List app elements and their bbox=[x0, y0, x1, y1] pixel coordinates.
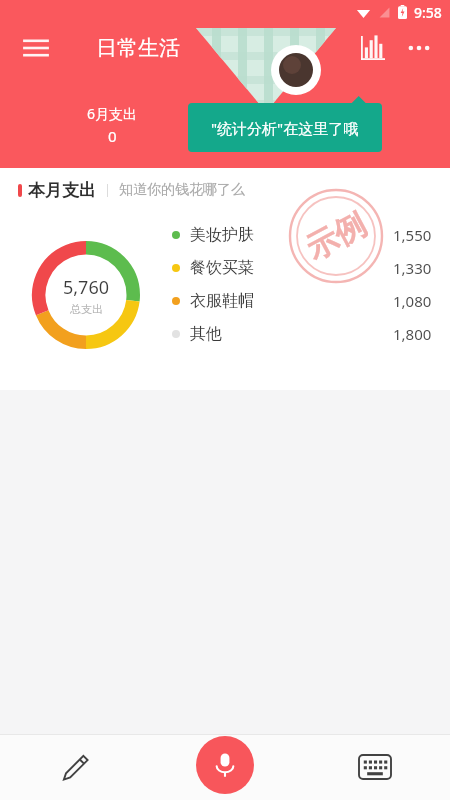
staticText: 知道你的钱花哪了么 bbox=[119, 181, 245, 199]
staticText: "统计分析"在这里了哦 bbox=[211, 118, 359, 138]
staticText: 5,760 bbox=[63, 275, 110, 300]
staticText: 6月支出 bbox=[87, 104, 138, 123]
staticText: 餐饮买菜 bbox=[190, 258, 254, 278]
button[interactable]: 衣服鞋帽 bbox=[172, 284, 432, 317]
staticText: 衣服鞋帽 bbox=[190, 291, 254, 311]
staticText: 日常生活 bbox=[96, 35, 180, 61]
staticText: 0 bbox=[108, 126, 117, 146]
button[interactable]: Write bbox=[0, 734, 150, 800]
button[interactable]: 6月支出 bbox=[0, 104, 224, 146]
staticText: 其他 bbox=[190, 324, 222, 344]
button[interactable]: 6月收入 bbox=[225, 104, 450, 146]
button[interactable]: Keyboard bbox=[300, 734, 450, 800]
staticText: 总支出 bbox=[70, 302, 103, 316]
staticText: 美妆护肤 bbox=[190, 225, 254, 245]
staticText: 示例 bbox=[299, 205, 373, 268]
button[interactable]: Menu bbox=[14, 26, 58, 70]
staticText: 1,550 bbox=[393, 225, 432, 245]
button[interactable]: "统计分析"在这里了哦 bbox=[188, 103, 382, 152]
button[interactable]: Voice input bbox=[196, 736, 254, 794]
button[interactable]: 餐饮买菜 bbox=[172, 251, 432, 284]
staticText: 本月支出 bbox=[28, 180, 96, 201]
staticText: 9:58 bbox=[414, 3, 442, 22]
button[interactable]: More options bbox=[396, 25, 442, 71]
button[interactable]: 美妆护肤 bbox=[172, 218, 432, 251]
button[interactable]: Statistics bbox=[350, 25, 396, 71]
staticText: 6月收入 bbox=[312, 104, 363, 123]
staticText: 1,330 bbox=[393, 258, 432, 278]
staticText: 1,800 bbox=[393, 324, 432, 344]
staticText: 0 bbox=[333, 126, 342, 146]
button[interactable]: 其他 bbox=[172, 317, 432, 350]
staticText: 1,080 bbox=[393, 291, 432, 311]
